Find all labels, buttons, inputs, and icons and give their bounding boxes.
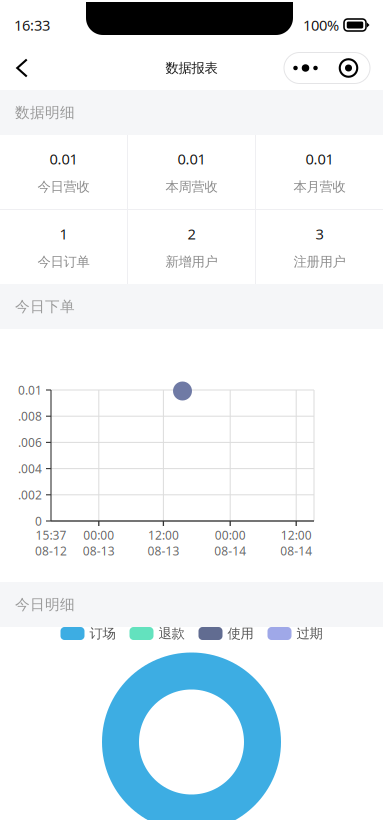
- staticText: 今日营收: [37, 179, 89, 195]
- button[interactable]: 3: [256, 210, 383, 284]
- button[interactable]: 0.01: [0, 135, 127, 209]
- staticText: 今日明细: [15, 595, 75, 613]
- staticText: 使用: [227, 625, 253, 642]
- button[interactable]: 2: [128, 210, 255, 284]
- staticText: 08-13: [147, 543, 179, 559]
- staticText: 订场: [89, 625, 115, 642]
- button[interactable]: 返回: [0, 46, 44, 90]
- staticText: 本月营收: [293, 179, 345, 195]
- staticText: 12:00: [148, 527, 179, 543]
- staticText: 注册用户: [293, 254, 345, 270]
- staticText: 08-13: [83, 543, 115, 559]
- staticText: 0: [35, 513, 42, 529]
- staticText: 退款: [158, 625, 184, 642]
- staticText: 08-14: [280, 543, 312, 559]
- staticText: 3: [315, 224, 323, 244]
- staticText: 本周营收: [165, 179, 217, 195]
- staticText: 1: [59, 224, 67, 244]
- staticText: 数据报表: [165, 60, 217, 76]
- staticText: 新增用户: [165, 254, 217, 270]
- staticText: 100%: [303, 15, 339, 35]
- staticText: .008: [18, 408, 42, 424]
- button[interactable]: 0.01: [128, 135, 255, 209]
- button[interactable]: 1: [0, 210, 127, 284]
- staticText: 数据明细: [15, 103, 75, 121]
- staticText: 15:37: [35, 527, 66, 543]
- staticText: 过期: [296, 625, 322, 642]
- staticText: 08-12: [35, 543, 67, 559]
- staticText: .002: [18, 487, 42, 503]
- staticText: 08-14: [214, 543, 246, 559]
- button[interactable]: 0.01: [256, 135, 383, 209]
- staticText: 0.01: [305, 149, 333, 169]
- staticText: 0.01: [177, 149, 205, 169]
- staticText: .004: [18, 461, 42, 476]
- staticText: 00:00: [83, 527, 114, 543]
- staticText: 16:33: [14, 15, 50, 35]
- staticText: 今日下单: [15, 297, 75, 315]
- staticText: 0.01: [18, 382, 42, 398]
- staticText: 00:00: [215, 527, 246, 543]
- staticText: 12:00: [281, 527, 312, 543]
- staticText: 2: [187, 224, 195, 244]
- staticText: 0.01: [49, 149, 77, 169]
- staticText: .006: [18, 434, 42, 450]
- button[interactable]: 更多: [284, 52, 370, 83]
- staticText: 今日订单: [37, 254, 89, 270]
